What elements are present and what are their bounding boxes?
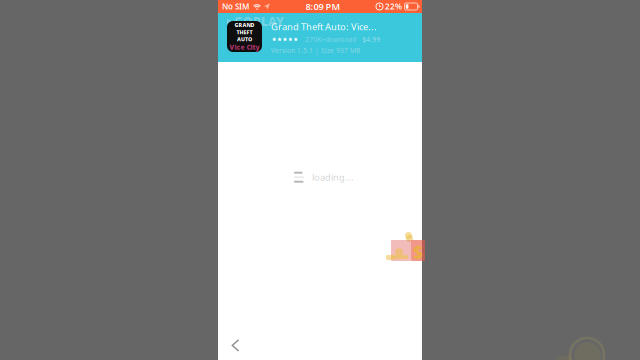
- staticText: GRAND: [234, 21, 254, 28]
- staticText: $: [413, 241, 423, 264]
- staticText: Grand Theft Auto: Vice...: [271, 20, 377, 33]
- staticText: 270K+download: [305, 35, 356, 44]
- button[interactable]: GRAND: [218, 13, 422, 56]
- button[interactable]: Back: [218, 335, 253, 356]
- staticText: $4.99: [362, 35, 380, 44]
- staticText: AUTO: [237, 36, 252, 43]
- staticText: THEFT: [236, 28, 252, 36]
- staticText: No SIM: [222, 1, 249, 12]
- staticText: 22%: [385, 1, 402, 12]
- staticText: loading...: [312, 171, 354, 183]
- staticText: 8:09 PM: [305, 0, 340, 13]
- staticText: Version 1.5.1 | Size 937 MB: [271, 46, 360, 55]
- button[interactable]: Rewards: [384, 231, 422, 261]
- staticText: GOPLAY: [234, 13, 284, 29]
- staticText: Vice City: [229, 43, 259, 52]
